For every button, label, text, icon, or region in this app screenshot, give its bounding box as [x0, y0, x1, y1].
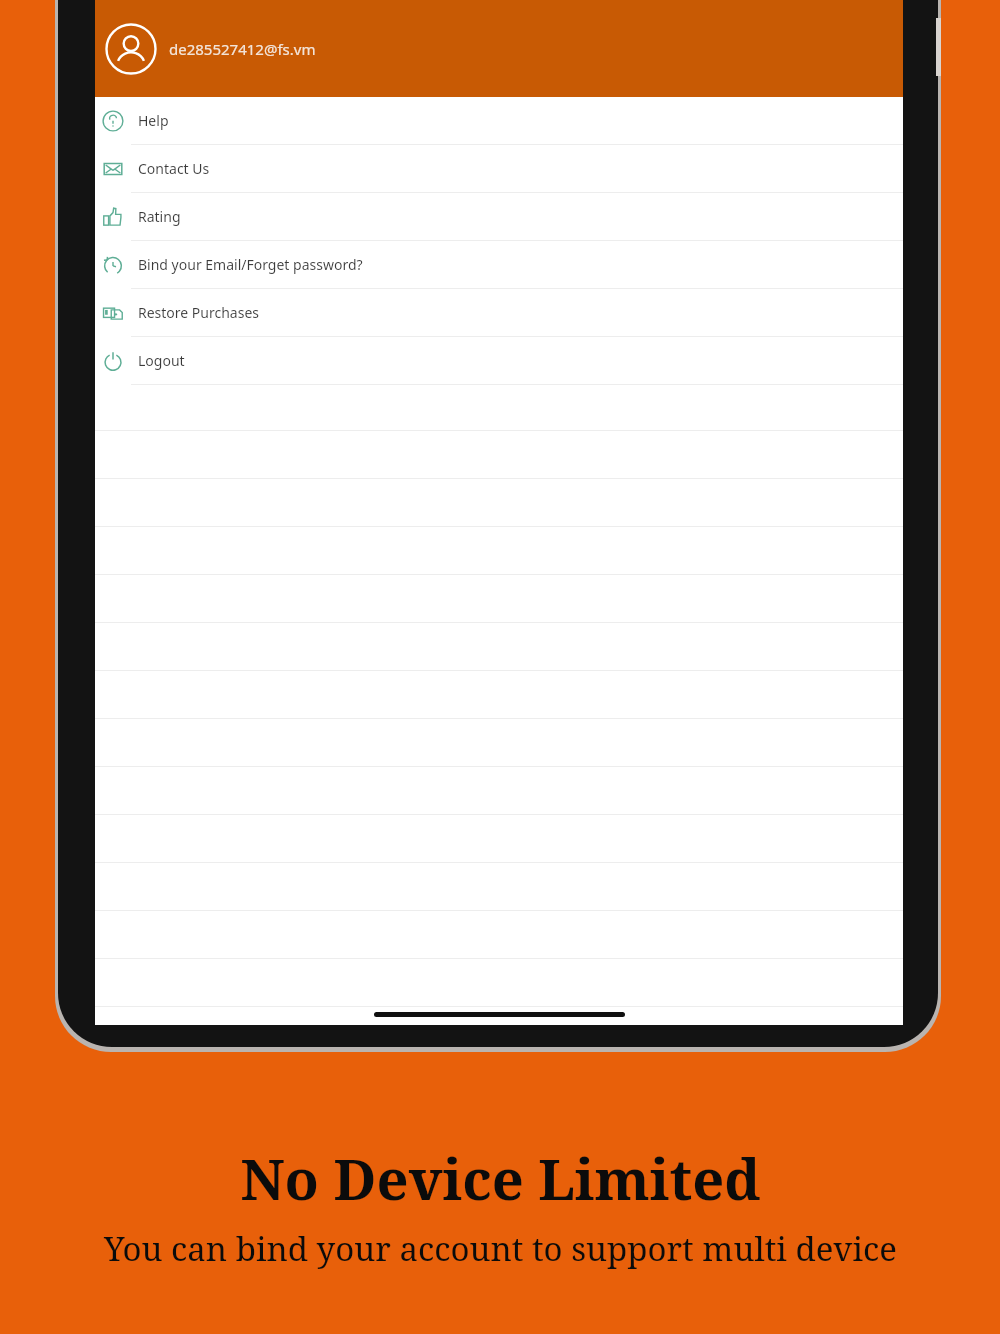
button[interactable]: Bind your Email/Forget password? — [95, 241, 903, 289]
staticText: de285527412@fs.vm — [169, 39, 316, 59]
button[interactable]: Logout — [95, 337, 903, 385]
staticText: Rating — [138, 207, 181, 226]
staticText: Restore Purchases — [138, 303, 260, 322]
staticText: Bind your Email/Forget password? — [138, 255, 363, 274]
staticText: No Device Limited — [240, 1140, 761, 1216]
button[interactable]: de285527412@fs.vm — [95, 0, 903, 97]
staticText: Logout — [138, 351, 185, 370]
button[interactable]: Contact Us — [95, 145, 903, 193]
button[interactable]: Help — [95, 97, 903, 145]
button[interactable]: Restore Purchases — [95, 289, 903, 337]
staticText: Contact Us — [138, 159, 210, 178]
staticText: You can bind your account to support mul… — [104, 1226, 897, 1271]
button[interactable]: Rating — [95, 193, 903, 241]
staticText: Help — [138, 111, 169, 130]
